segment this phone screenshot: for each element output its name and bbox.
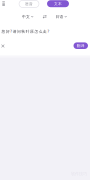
staticText: 语音 (25, 1, 33, 6)
staticText: 文本 (54, 1, 62, 6)
button[interactable]: 日语 (55, 14, 67, 19)
button[interactable]: Menu (1, 1, 7, 7)
button[interactable]: 语音 (19, 0, 39, 7)
staticText: 您好?请问秋叶原怎么走? (2, 29, 49, 34)
button[interactable]: 文本 (47, 0, 69, 7)
button[interactable]: Swap languages (42, 14, 47, 19)
button[interactable]: 翻译 (73, 42, 88, 49)
staticText: 翻译 (77, 43, 85, 48)
button[interactable]: 中文 (22, 14, 33, 19)
button[interactable]: Clear text (0, 43, 5, 48)
staticText: 中文 (22, 14, 30, 19)
staticText: 日语 (55, 14, 63, 19)
